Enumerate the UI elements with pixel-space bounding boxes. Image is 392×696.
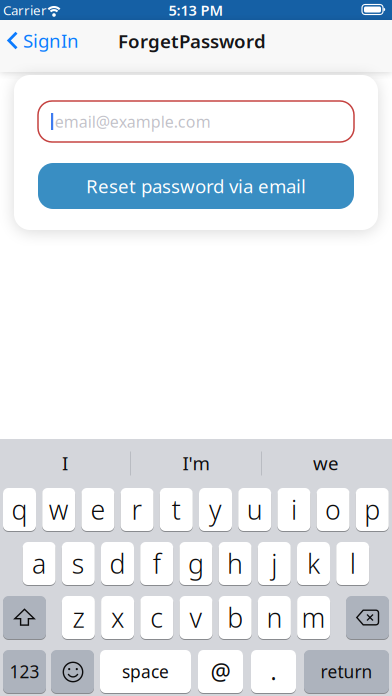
button[interactable]: f xyxy=(140,542,173,585)
button[interactable]: v xyxy=(179,596,212,639)
staticText: ForgetPassword xyxy=(118,29,266,53)
button[interactable]: b xyxy=(219,596,252,639)
button[interactable]: a xyxy=(23,542,56,585)
staticText: d xyxy=(109,546,125,581)
button[interactable]: r xyxy=(121,488,154,531)
button[interactable]: Shift xyxy=(3,596,46,639)
button[interactable]: we xyxy=(266,443,386,483)
staticText: i xyxy=(291,492,297,527)
button[interactable]: . xyxy=(251,650,296,693)
button[interactable]: u xyxy=(238,488,271,531)
button[interactable]: e xyxy=(81,488,114,531)
staticText: Carrier xyxy=(3,1,47,19)
staticText: b xyxy=(227,600,243,635)
button[interactable]: @ xyxy=(198,650,243,693)
staticText: SignIn xyxy=(23,28,79,53)
button[interactable]: n xyxy=(258,596,291,639)
staticText: s xyxy=(72,546,85,581)
staticText: r xyxy=(132,492,143,527)
staticText: 5:13 PM xyxy=(168,0,223,20)
button[interactable]: SignIn xyxy=(7,28,79,53)
button[interactable]: s xyxy=(62,542,95,585)
staticText: t xyxy=(172,492,181,527)
staticText: space xyxy=(122,660,169,683)
button[interactable]: d xyxy=(101,542,134,585)
staticText: 123 xyxy=(9,660,39,683)
staticText: m xyxy=(302,600,326,635)
button[interactable]: Delete xyxy=(346,596,389,639)
staticText: u xyxy=(247,492,263,527)
button[interactable]: z xyxy=(62,596,95,639)
button[interactable]: p xyxy=(356,488,389,531)
staticText: k xyxy=(307,546,320,581)
staticText: we xyxy=(313,451,339,475)
button[interactable]: t xyxy=(160,488,193,531)
staticText: o xyxy=(325,492,341,527)
button[interactable]: j xyxy=(258,542,291,585)
staticText: h xyxy=(227,546,243,581)
staticText: I xyxy=(62,451,68,475)
button[interactable]: m xyxy=(297,596,330,639)
button[interactable]: h xyxy=(219,542,252,585)
staticText: q xyxy=(11,492,27,527)
staticText: w xyxy=(49,492,69,527)
button[interactable]: q xyxy=(3,488,36,531)
staticText: return xyxy=(320,660,372,683)
button[interactable]: return xyxy=(304,650,389,693)
button[interactable]: k xyxy=(297,542,330,585)
staticText: c xyxy=(150,600,163,635)
button[interactable]: g xyxy=(179,542,212,585)
button[interactable]: c xyxy=(140,596,173,639)
button[interactable]: I xyxy=(5,443,125,483)
button[interactable]: Reset password via email xyxy=(38,163,354,209)
staticText: p xyxy=(364,492,380,527)
staticText: . xyxy=(270,656,276,686)
button[interactable]: x xyxy=(101,596,134,639)
button[interactable]: y xyxy=(199,488,232,531)
staticText: x xyxy=(111,600,124,635)
staticText: f xyxy=(153,546,161,581)
staticText: a xyxy=(32,546,46,581)
button[interactable]: space xyxy=(100,650,191,693)
staticText: g xyxy=(188,546,204,581)
button[interactable]: 123 xyxy=(3,650,46,693)
button[interactable]: o xyxy=(317,488,350,531)
staticText: l xyxy=(350,546,356,581)
button[interactable]: Email xyxy=(38,101,354,142)
staticText: v xyxy=(189,600,202,635)
staticText: y xyxy=(209,492,222,527)
staticText: email@example.com xyxy=(55,111,211,132)
button[interactable]: Emoji xyxy=(51,650,94,693)
staticText: z xyxy=(72,600,84,635)
staticText: @ xyxy=(210,656,230,686)
button[interactable]: I'm xyxy=(136,443,256,483)
button[interactable]: l xyxy=(336,542,369,585)
staticText: n xyxy=(266,600,282,635)
button[interactable]: w xyxy=(42,488,75,531)
staticText: e xyxy=(90,492,105,527)
staticText: I'm xyxy=(182,451,209,475)
button[interactable]: i xyxy=(277,488,310,531)
staticText: Reset password via email xyxy=(86,174,306,198)
staticText: j xyxy=(271,546,277,581)
